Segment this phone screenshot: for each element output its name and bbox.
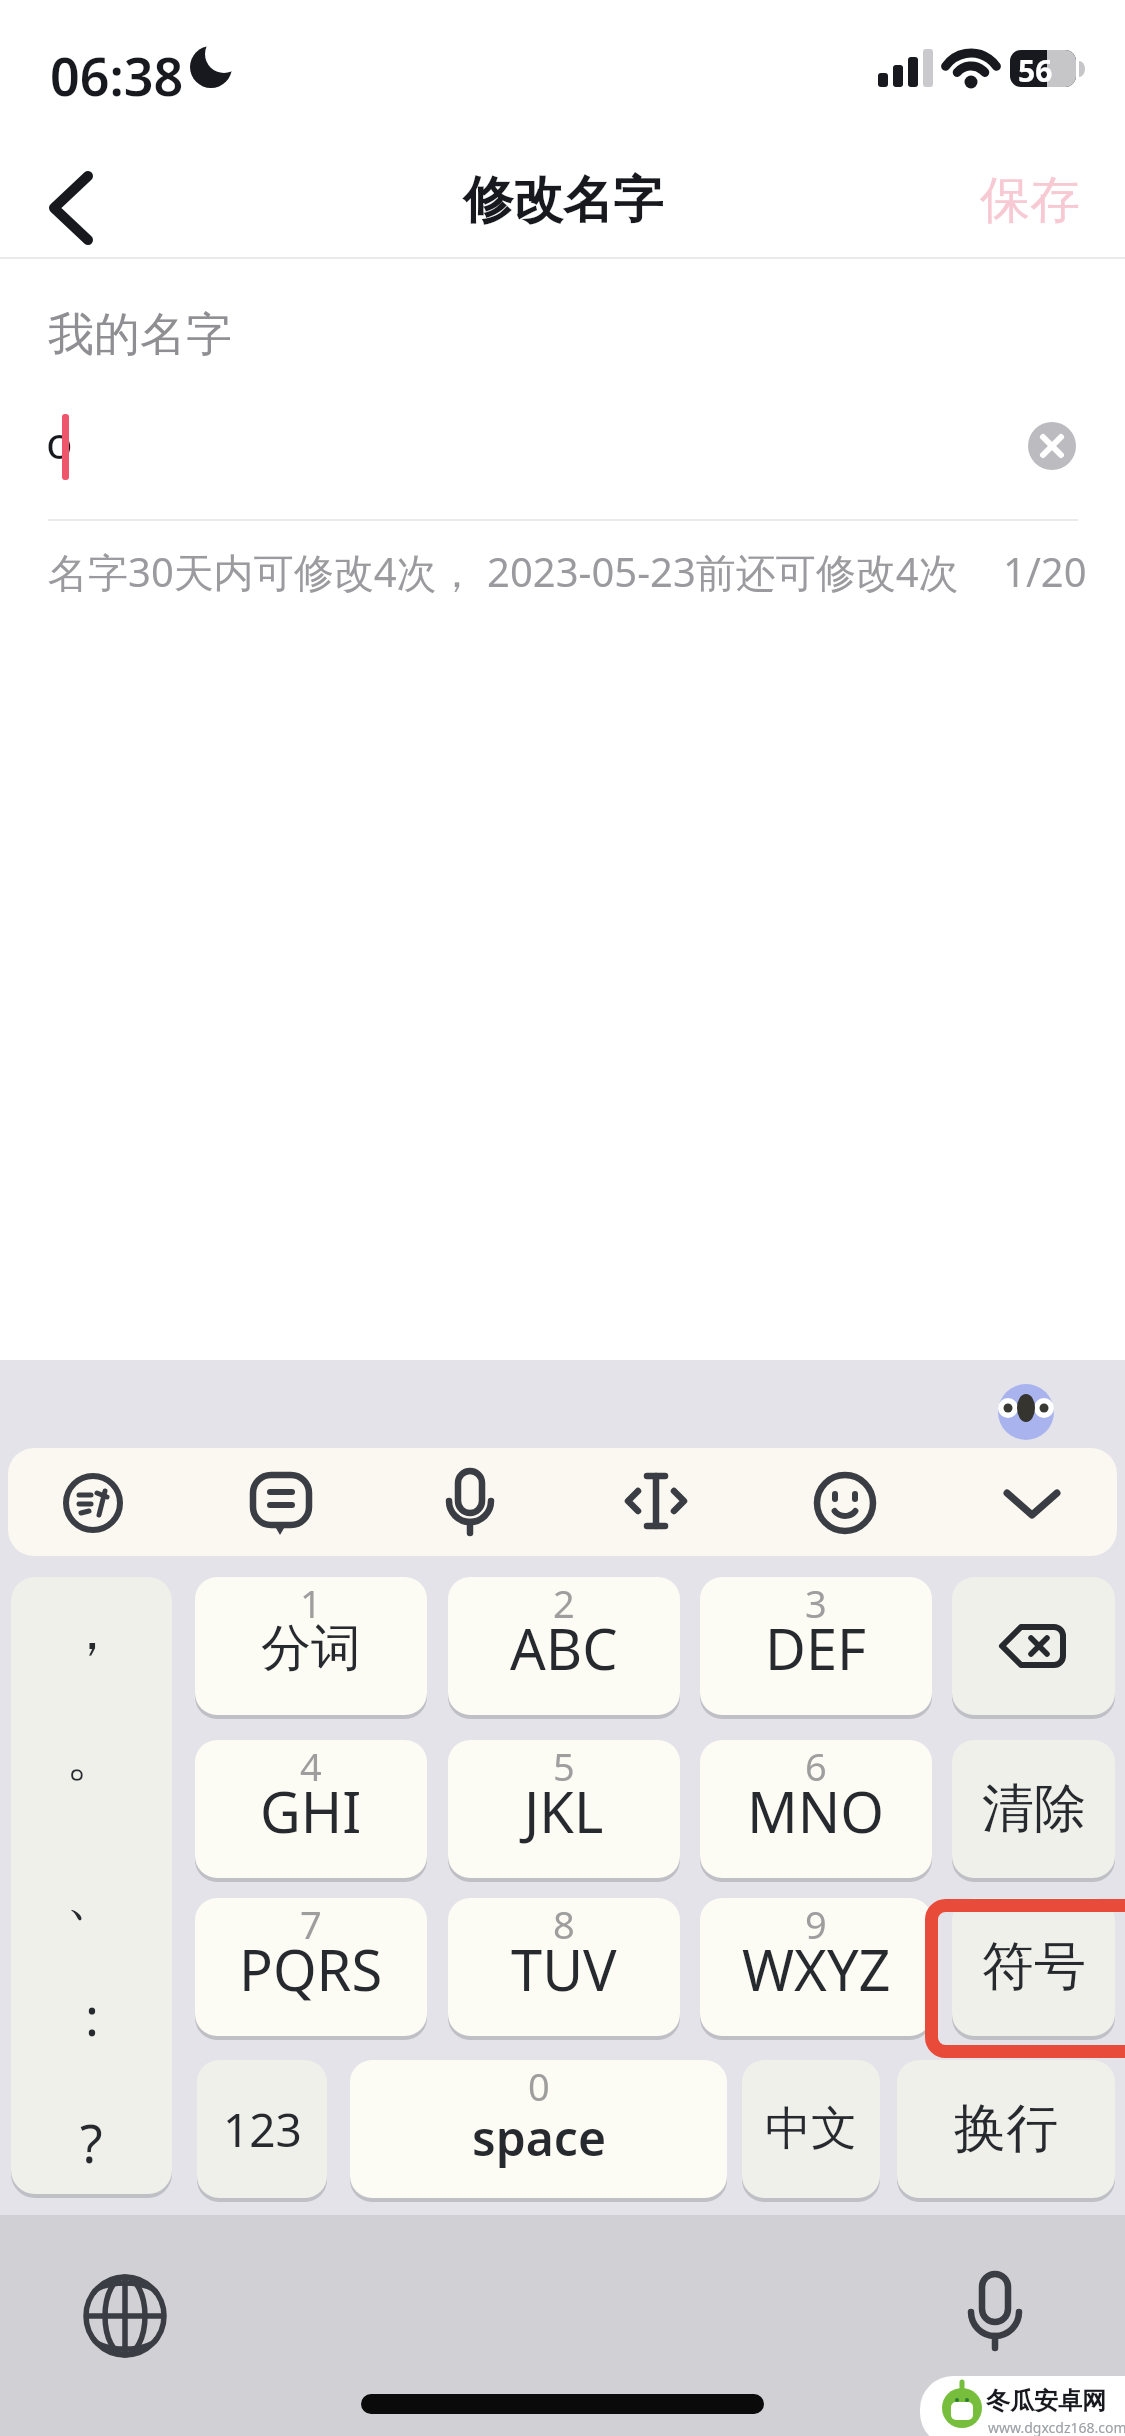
button[interactable]: 6 <box>700 1740 932 1878</box>
button[interactable] <box>952 1577 1115 1715</box>
button[interactable] <box>80 2271 170 2361</box>
staticText: 3 <box>805 1577 827 1629</box>
staticText: 4 <box>300 1740 322 1792</box>
button[interactable]: 清除 <box>952 1740 1115 1878</box>
button[interactable] <box>805 1463 885 1543</box>
button[interactable]: 7 <box>195 1898 427 2036</box>
staticText: : <box>85 1980 99 2051</box>
button[interactable] <box>53 1463 133 1543</box>
button[interactable] <box>1028 422 1076 470</box>
staticText: DEF <box>765 1610 867 1686</box>
button[interactable]: 3 <box>700 1577 932 1715</box>
button[interactable] <box>992 1463 1072 1543</box>
staticText: o <box>46 412 73 472</box>
staticText: GHI <box>260 1773 362 1849</box>
staticText: 6 <box>805 1740 827 1792</box>
button[interactable] <box>430 1463 510 1543</box>
staticText: 123 <box>223 2098 302 2161</box>
button[interactable]: 9 <box>700 1898 932 2036</box>
staticText: 保存 <box>980 169 1080 232</box>
button[interactable]: 换行 <box>897 2060 1115 2198</box>
button[interactable]: 符号 <box>952 1898 1115 2036</box>
staticText: 、 <box>66 1864 118 1930</box>
staticText: TUV <box>511 1931 617 2007</box>
staticText: 修改名字 <box>463 169 663 232</box>
staticText: 0 <box>528 2060 550 2112</box>
button[interactable]: 1 <box>195 1577 427 1715</box>
staticText: 符号 <box>982 1934 1086 2000</box>
staticText: 名字30天内可修改4次， 2023-05-23前还可修改4次 <box>48 544 959 599</box>
staticText: PQRS <box>239 1931 383 2007</box>
button[interactable]: 2 <box>448 1577 680 1715</box>
button[interactable] <box>241 1463 321 1543</box>
staticText: JKL <box>524 1773 604 1849</box>
staticText: 冬瓜安卓网 <box>986 2386 1106 2416</box>
button[interactable] <box>950 2266 1040 2366</box>
button[interactable]: 5 <box>448 1740 680 1878</box>
staticText: 中文 <box>765 2100 857 2158</box>
staticText: ? <box>80 2107 103 2178</box>
staticText: 7 <box>300 1898 322 1950</box>
button[interactable] <box>11 1577 172 2194</box>
staticText: 1 <box>300 1577 322 1629</box>
button[interactable]: 、 <box>11 1857 172 1937</box>
button[interactable]: : <box>11 1975 172 2055</box>
staticText: 56 <box>1018 50 1053 91</box>
button[interactable] <box>20 150 130 260</box>
button[interactable] <box>999 1384 1055 1440</box>
staticText: ， <box>66 1599 118 1665</box>
button[interactable]: 4 <box>195 1740 427 1878</box>
button[interactable]: 0 <box>350 2060 727 2198</box>
staticText: 我的名字 <box>48 306 232 364</box>
button[interactable]: 保存 <box>950 158 1110 242</box>
button[interactable]: 8 <box>448 1898 680 2036</box>
button[interactable]: ? <box>11 2102 172 2182</box>
staticText: 1/20 <box>1003 544 1087 598</box>
button[interactable] <box>616 1463 696 1543</box>
staticText: 9 <box>805 1898 827 1950</box>
staticText: www.dgxcdz168.com <box>988 2418 1125 2436</box>
button[interactable]: 中文 <box>742 2060 880 2198</box>
staticText: ABC <box>510 1610 618 1686</box>
staticText: 5 <box>553 1740 575 1792</box>
button[interactable]: ， <box>11 1592 172 1672</box>
staticText: 8 <box>553 1898 575 1950</box>
staticText: MNO <box>747 1773 885 1849</box>
staticText: 2 <box>553 1577 575 1629</box>
button[interactable]: 。 <box>11 1718 172 1798</box>
staticText: 换行 <box>954 2096 1058 2162</box>
staticText: space <box>472 2105 606 2170</box>
staticText: 。 <box>66 1725 118 1791</box>
staticText: 06:38 <box>50 40 184 111</box>
staticText: 清除 <box>982 1776 1086 1842</box>
button[interactable]: 123 <box>197 2060 327 2198</box>
staticText: WXYZ <box>742 1931 891 2007</box>
staticText: 分词 <box>261 1617 361 1680</box>
